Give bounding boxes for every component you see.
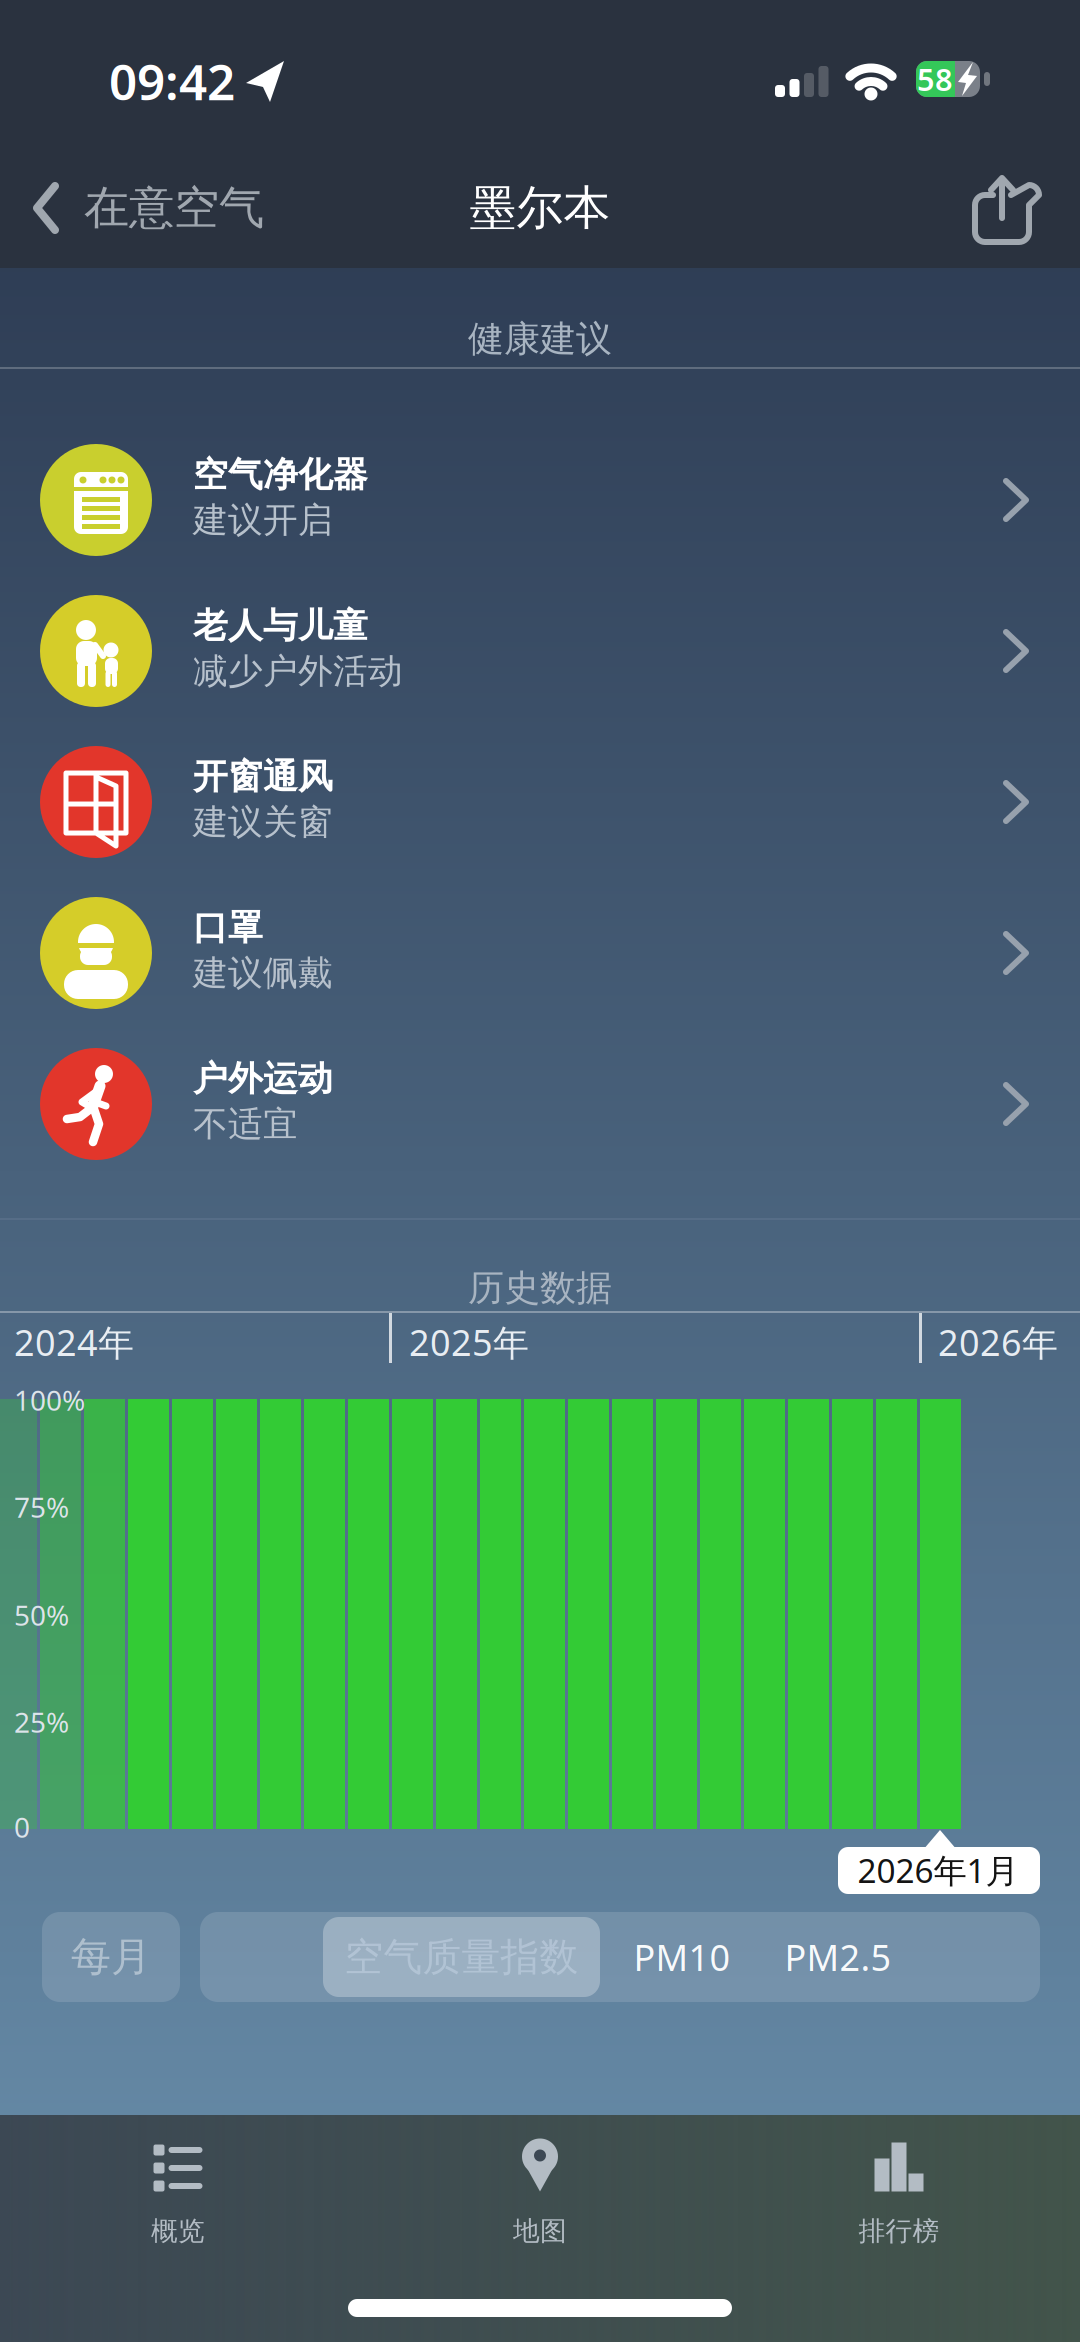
staticText: 空气质量指数 (344, 1933, 578, 1981)
button[interactable]: 开窗通风 (0, 726, 1080, 877)
staticText: 0 (14, 1808, 30, 1846)
staticText: 口罩 (193, 906, 263, 949)
staticText: 健康建议 (468, 317, 612, 361)
button[interactable]: 排行榜 (759, 2118, 1039, 2288)
button[interactable]: 空气质量指数 (323, 1917, 600, 1997)
staticText: 每月 (71, 1932, 151, 1981)
button[interactable]: 每月 (42, 1912, 180, 2002)
button[interactable]: PM10 (602, 1912, 762, 2002)
staticText: 建议佩戴 (193, 952, 333, 995)
staticText: 老人与儿童 (193, 604, 368, 647)
staticText: 在意空气 (84, 180, 264, 236)
button[interactable]: 地图 (400, 2118, 680, 2288)
button[interactable]: 户外运动 (0, 1028, 1080, 1179)
staticText: 2026年 (938, 1318, 1058, 1366)
staticText: 墨尔本 (469, 179, 610, 237)
staticText: 2024年 (14, 1318, 134, 1366)
staticText: 户外运动 (193, 1057, 333, 1100)
staticText: 2026年1月 (857, 1848, 1018, 1892)
staticText: 25% (14, 1703, 69, 1741)
staticText: PM2.5 (784, 1933, 891, 1981)
staticText: 地图 (513, 2215, 567, 2247)
staticText: 09:42 (109, 48, 235, 114)
staticText: 排行榜 (858, 2215, 939, 2247)
button[interactable]: 空气净化器 (0, 424, 1080, 575)
staticText: 减少户外活动 (193, 650, 403, 693)
staticText: 不适宜 (193, 1103, 298, 1146)
staticText: 建议关窗 (193, 801, 333, 844)
button[interactable]: PM2.5 (758, 1912, 918, 2002)
button[interactable]: Share (963, 165, 1039, 249)
staticText: 2025年 (409, 1318, 529, 1366)
staticText: 开窗通风 (193, 755, 333, 798)
button[interactable]: 老人与儿童 (0, 575, 1080, 726)
staticText: 75% (14, 1488, 69, 1526)
button[interactable]: 概览 (38, 2118, 318, 2288)
staticText: 概览 (151, 2215, 205, 2247)
staticText: 建议开启 (193, 499, 333, 542)
staticText: 历史数据 (468, 1266, 612, 1310)
staticText: 100% (14, 1381, 85, 1419)
staticText: 空气净化器 (193, 453, 368, 496)
button[interactable]: 口罩 (0, 877, 1080, 1028)
staticText: 50% (14, 1596, 69, 1634)
staticText: PM10 (633, 1933, 730, 1981)
button[interactable]: Back (34, 180, 264, 236)
staticText: 58 (917, 59, 953, 99)
